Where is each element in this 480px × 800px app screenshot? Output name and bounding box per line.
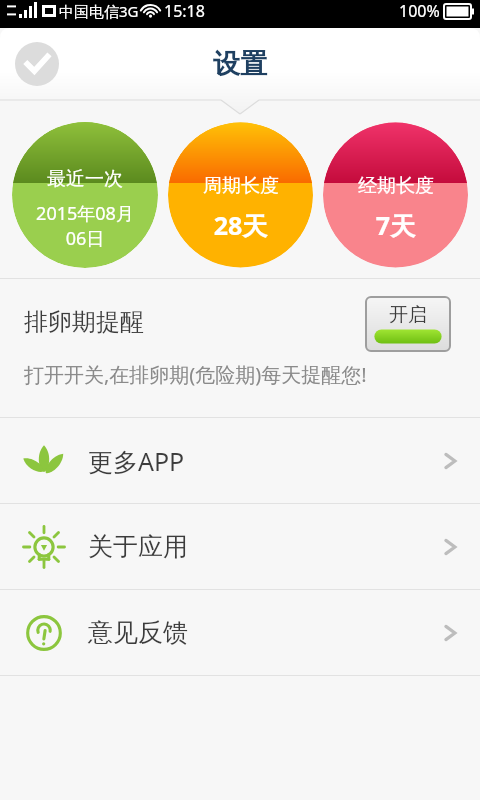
- staticText: 意见反馈: [88, 617, 188, 648]
- staticText: 排卵期提醒: [24, 307, 144, 337]
- staticText: 打开开关,在排卵期(危险期)每天提醒您!: [24, 361, 367, 388]
- staticText: 28天: [168, 208, 313, 242]
- staticText: 100%: [399, 0, 440, 22]
- staticText: 15:18: [164, 0, 205, 22]
- staticText: 2015年08月 06日: [12, 201, 158, 250]
- staticText: 7天: [323, 208, 468, 242]
- button[interactable]: Confirm: [15, 42, 59, 86]
- staticText: 更多APP: [88, 444, 185, 478]
- button[interactable]: 意见反馈: [0, 590, 480, 675]
- staticText: 开启: [389, 303, 427, 327]
- button[interactable]: 经期长度: [323, 122, 468, 268]
- staticText: 中国电信3G: [59, 1, 139, 21]
- button[interactable]: 最近一次: [12, 122, 158, 268]
- button[interactable]: 周期长度: [168, 122, 313, 268]
- button[interactable]: Ovulation reminder toggle, on: [366, 297, 450, 351]
- staticText: 最近一次: [47, 167, 123, 191]
- staticText: 设置: [213, 47, 267, 81]
- staticText: 周期长度: [203, 174, 279, 198]
- staticText: 经期长度: [358, 174, 434, 198]
- button[interactable]: 关于应用: [0, 504, 480, 589]
- button[interactable]: 更多APP: [0, 418, 480, 503]
- staticText: 关于应用: [88, 531, 188, 562]
